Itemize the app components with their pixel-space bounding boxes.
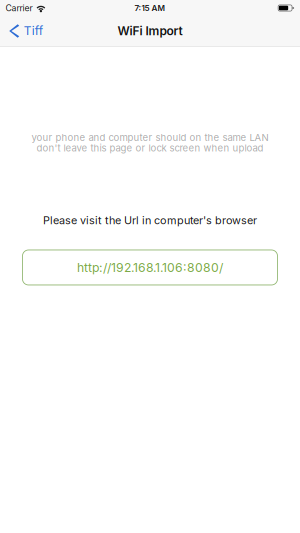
- staticText: Carrier: [5, 3, 32, 13]
- staticText: http://192.168.1.106:8080/: [77, 260, 223, 275]
- staticText: your phone and computer should on the sa…: [31, 132, 268, 143]
- staticText: 7:15 AM: [134, 3, 165, 13]
- staticText: Tiff: [24, 24, 43, 38]
- button[interactable]: http://192.168.1.106:8080/: [22, 250, 277, 285]
- staticText: don't leave this page or lock screen whe…: [36, 142, 263, 154]
- staticText: Please visit the Url in computer's brows…: [43, 214, 257, 227]
- staticText: WiFi Import: [117, 24, 182, 38]
- button[interactable]: Tiff: [0, 16, 49, 45]
